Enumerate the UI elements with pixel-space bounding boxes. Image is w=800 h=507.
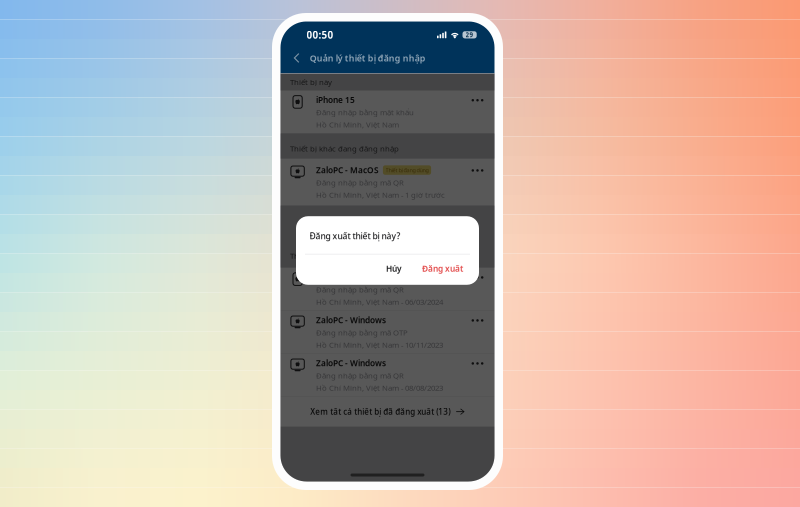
- staticText: Hồ Chí Minh, Việt Nam - 08/08/2023: [316, 382, 443, 393]
- staticText: Đăng nhập bằng mã QR: [316, 284, 404, 295]
- button[interactable]: ZaloPC - MacOS: [280, 159, 494, 206]
- staticText: Đăng nhập bằng mã QR: [316, 177, 404, 188]
- staticText: Thiết bị này: [290, 77, 332, 87]
- staticText: Đăng nhập bằng mã OTP: [316, 327, 408, 338]
- staticText: 00:50: [306, 28, 333, 41]
- staticText: 29: [466, 31, 474, 39]
- staticText: Thiết bị đã đăng xuất gần đây: [290, 250, 398, 261]
- staticText: ZaloPC - Windows: [316, 314, 386, 326]
- staticText: Hủy: [386, 263, 402, 274]
- staticText: Xem tất cả thiết bị đã đăng xuất (13): [310, 406, 450, 417]
- button[interactable]: iPhone 14 Pro: [280, 268, 494, 311]
- staticText: ZaloPC - Windows: [316, 357, 386, 369]
- staticText: Đăng xuất thiết bị này?: [309, 230, 400, 242]
- staticText: Quản lý thiết bị đăng nhập: [310, 52, 426, 64]
- staticText: Hồ Chí Minh, Việt Nam - 10/11/2023: [316, 339, 443, 350]
- button[interactable]: Back: [289, 49, 304, 67]
- staticText: Đăng nhập bằng mật khẩu: [316, 107, 414, 118]
- staticText: Đăng nhập bằng mã QR: [316, 370, 404, 381]
- button[interactable]: Đăng xuất: [412, 254, 473, 283]
- staticText: Hồ Chí Minh, Việt Nam - 06/03/2024: [316, 296, 443, 307]
- button[interactable]: Hủy: [376, 254, 412, 283]
- button[interactable]: Xem tất cả thiết bị đã đăng xuất (13): [280, 397, 494, 427]
- staticText: Hồ Chí Minh, Việt Nam: [316, 119, 399, 130]
- staticText: Hồ Chí Minh, Việt Nam - 1 giờ trước: [316, 189, 445, 200]
- staticText: iPhone 15: [316, 94, 355, 105]
- staticText: Thiết bị khác đang đăng nhập: [290, 143, 399, 154]
- staticText: Đăng xuất: [422, 263, 463, 274]
- button[interactable]: ZaloPC - Windows: [280, 354, 494, 397]
- staticText: Thiết bị đang dùng: [385, 166, 428, 174]
- staticText: ZaloPC - MacOS: [316, 164, 379, 176]
- button[interactable]: ZaloPC - Windows: [280, 311, 494, 354]
- button[interactable]: iPhone 15: [280, 90, 494, 133]
